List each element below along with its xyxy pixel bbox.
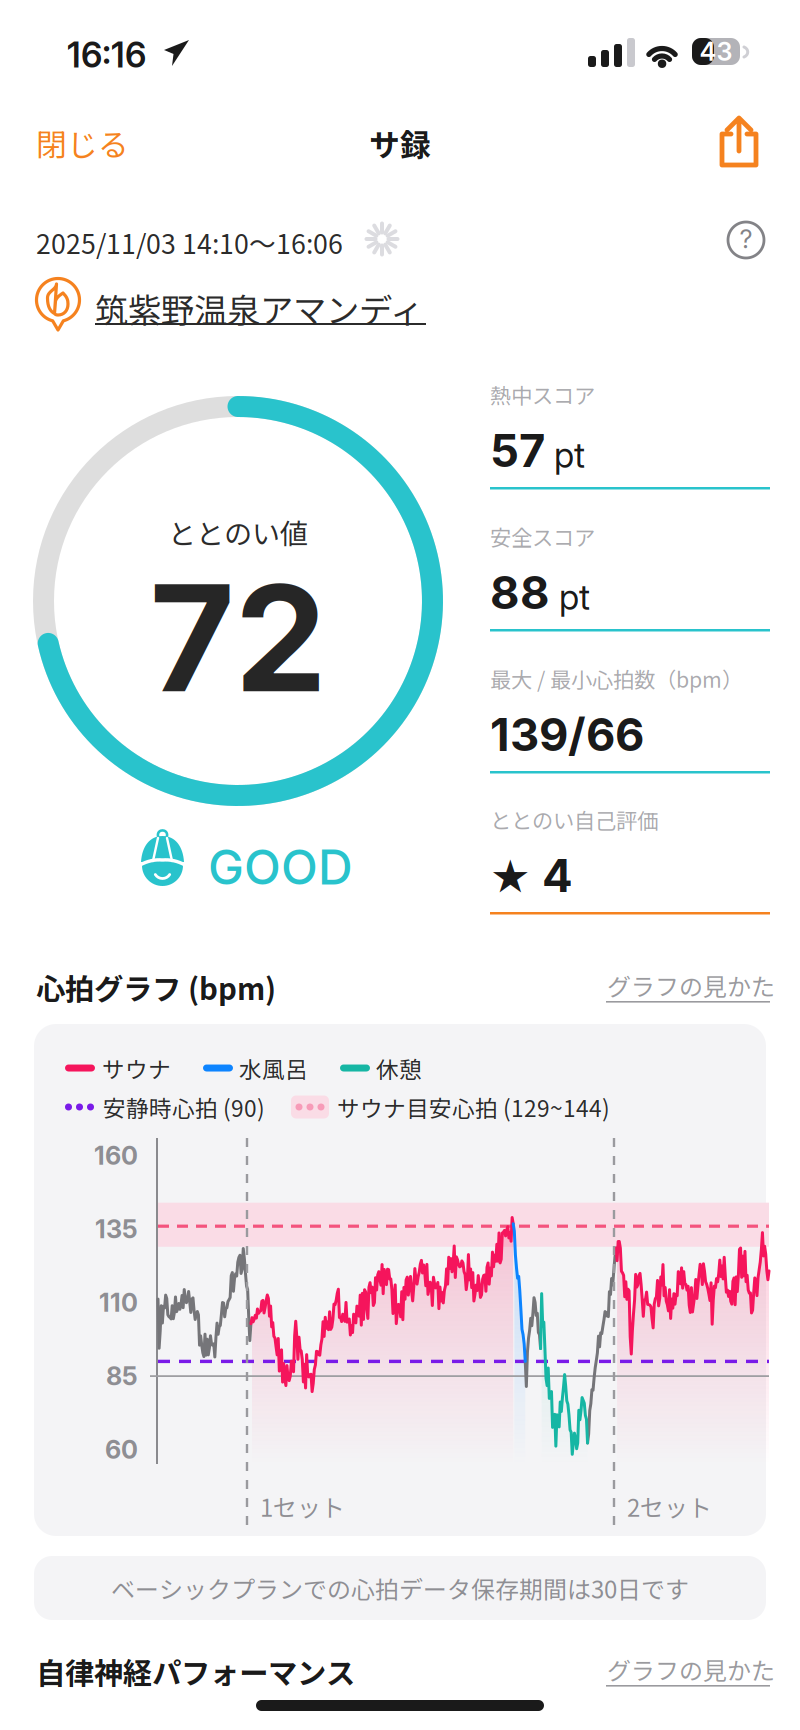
button[interactable]: グラフの見かた xyxy=(600,1646,776,1698)
staticText: 85 xyxy=(106,1361,138,1391)
button[interactable]: Help xyxy=(718,212,774,268)
button[interactable]: グラフの見かた xyxy=(600,962,776,1014)
staticText: 4 xyxy=(542,848,573,903)
staticText: 139/66 xyxy=(490,707,644,762)
staticText: pt xyxy=(554,434,585,476)
staticText: ととのい自己評価 xyxy=(490,804,658,835)
staticText: 57 xyxy=(490,423,545,478)
staticText: 160 xyxy=(94,1140,138,1171)
staticText: 135 xyxy=(95,1214,138,1244)
staticText: 安静時心拍 (90) xyxy=(103,1091,265,1123)
staticText: 最大 / 最小心拍数（bpm） xyxy=(490,663,743,694)
staticText: 筑紫野温泉アマンディ xyxy=(95,284,423,332)
button[interactable]: Share xyxy=(700,104,778,180)
staticText: 60 xyxy=(105,1434,138,1465)
staticText: 熱中スコア xyxy=(490,379,595,410)
staticText: 1セット xyxy=(260,1489,345,1524)
staticText: グラフの見かた xyxy=(607,968,775,1003)
staticText: サ録 xyxy=(369,121,431,165)
staticText: ? xyxy=(739,224,752,254)
staticText: 自律神経パフォーマンス xyxy=(36,1650,355,1692)
staticText: GOOD xyxy=(208,838,353,896)
staticText: 安全スコア xyxy=(490,521,595,552)
staticText: 72 xyxy=(149,549,326,727)
staticText: 88 xyxy=(490,565,550,620)
staticText: 閉じる xyxy=(36,121,129,165)
staticText: 水風呂 xyxy=(239,1052,308,1084)
staticText: 休憩 xyxy=(376,1052,422,1084)
staticText: ベーシックプランでの心拍データ保存期間は30日です xyxy=(111,1571,689,1605)
staticText: サウナ目安心拍 (129~144) xyxy=(337,1091,610,1123)
staticText: 110 xyxy=(99,1287,138,1318)
staticText: ととのい値 xyxy=(168,512,308,552)
staticText: 16:16 xyxy=(67,34,146,76)
staticText: 2025/11/03 14:10〜16:06 xyxy=(36,223,343,262)
staticText: 43 xyxy=(699,36,732,67)
staticText: サウナ xyxy=(102,1052,171,1084)
staticText: 心拍グラフ (bpm) xyxy=(36,966,276,1008)
button[interactable]: 筑紫野温泉アマンディ xyxy=(32,276,432,336)
button[interactable]: 閉じる xyxy=(36,106,166,180)
staticText: ★ xyxy=(490,850,531,903)
staticText: 2セット xyxy=(627,1489,712,1524)
staticText: グラフの見かた xyxy=(607,1652,775,1687)
staticText: pt xyxy=(559,576,590,618)
